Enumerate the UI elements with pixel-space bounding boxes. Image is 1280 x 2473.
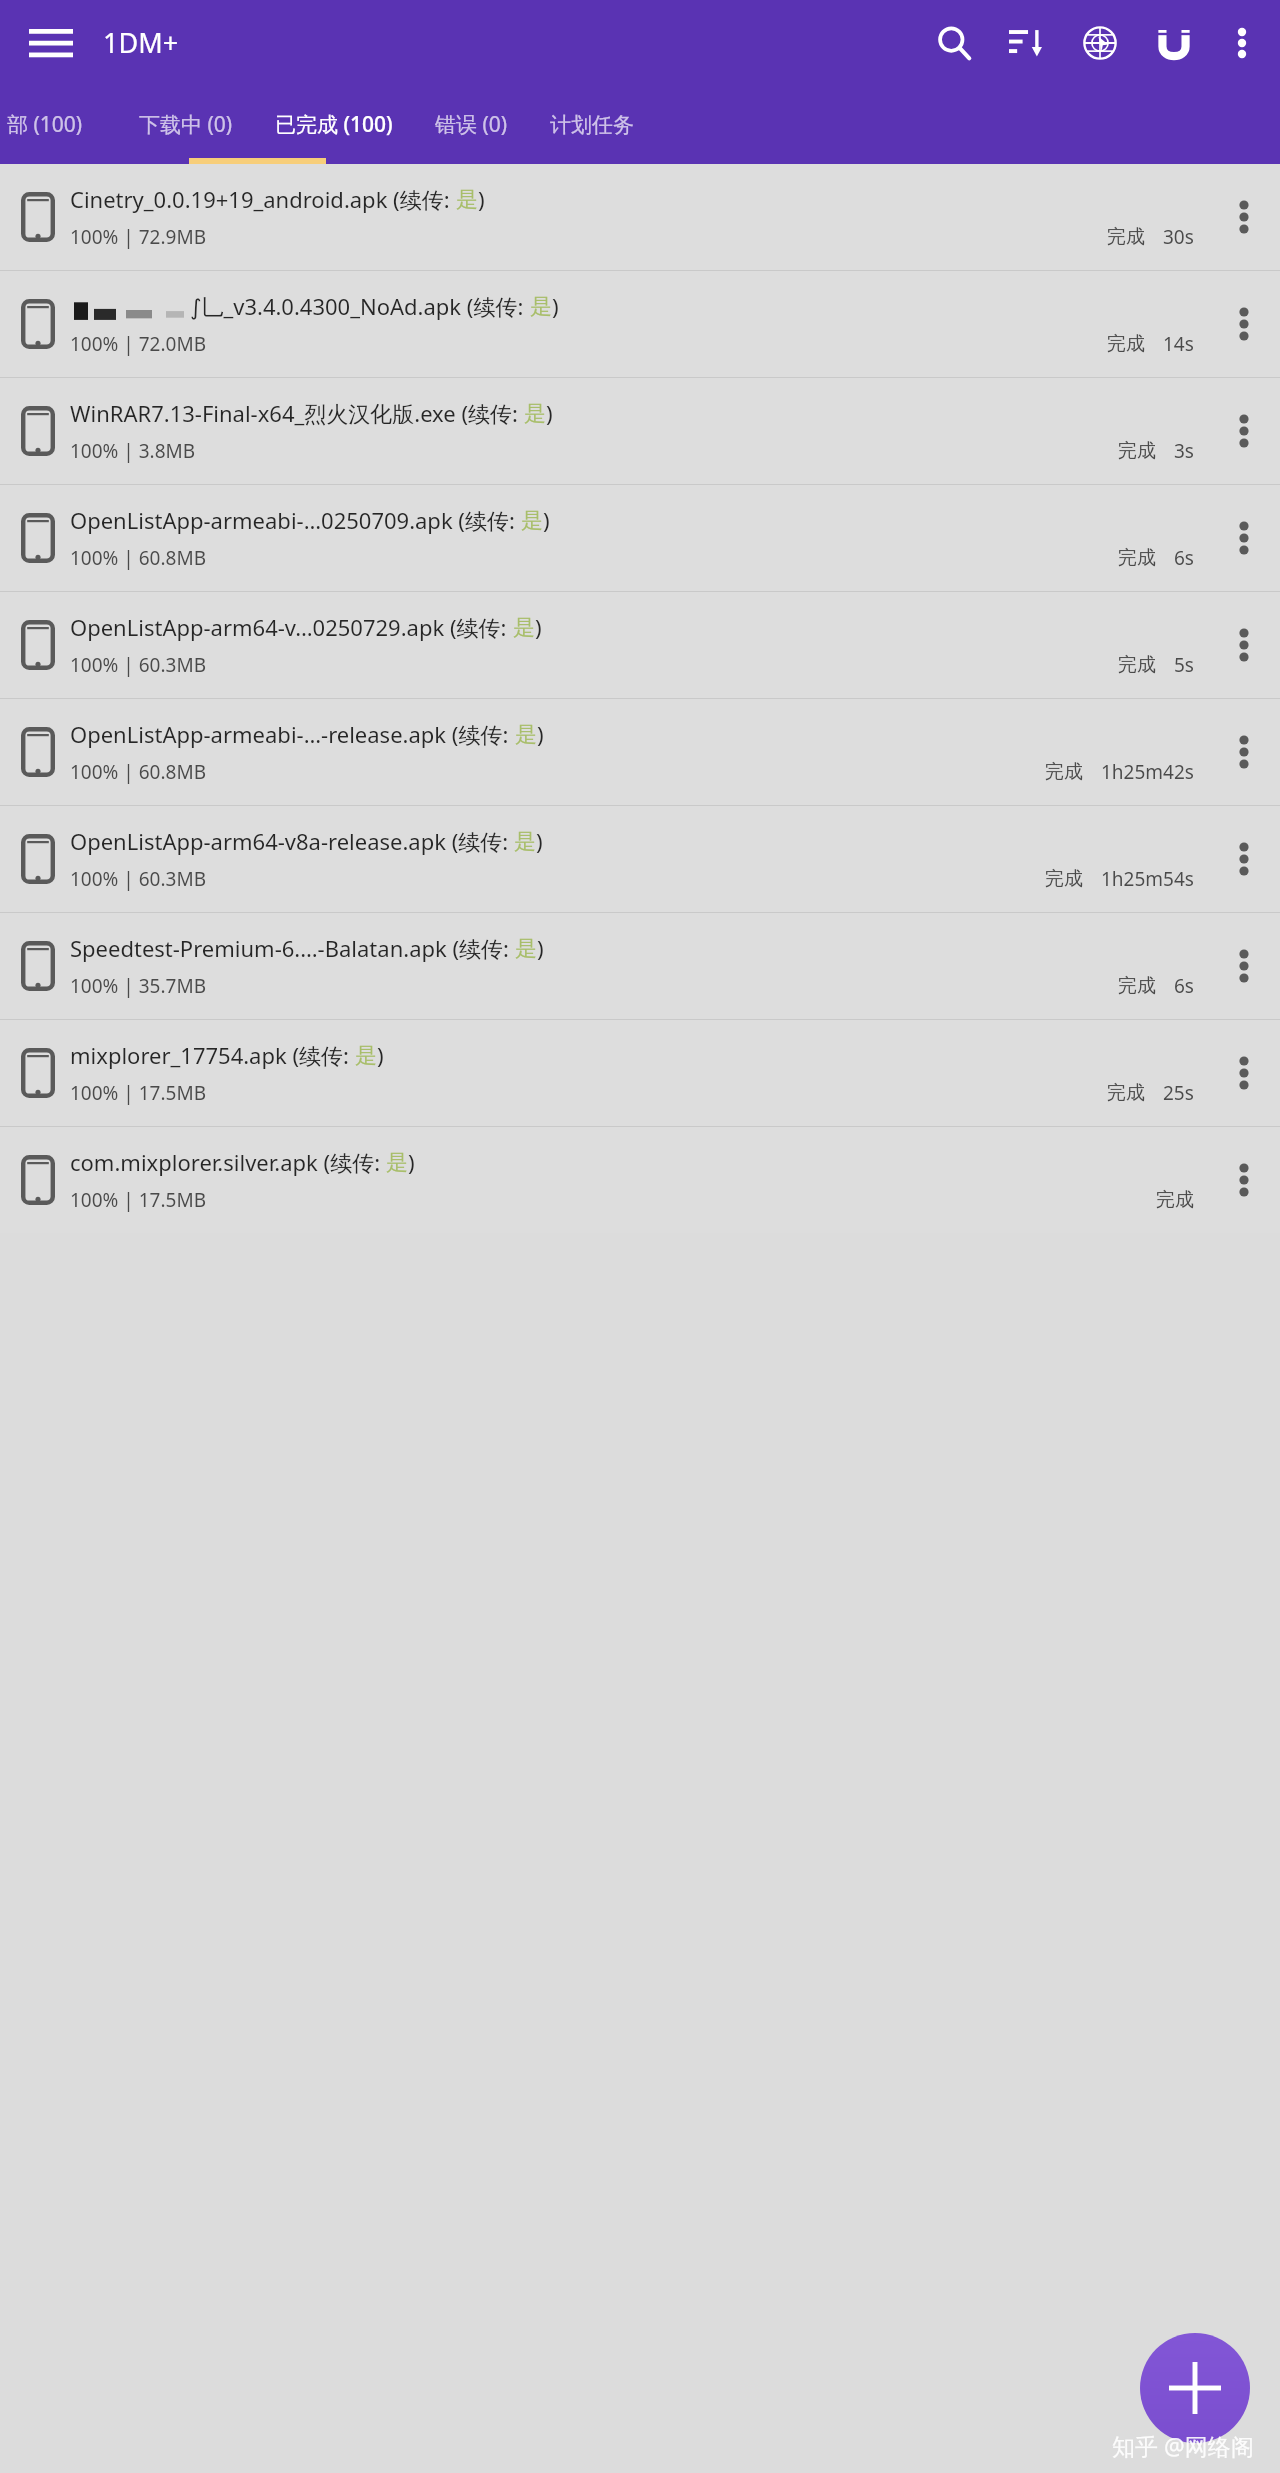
button[interactable]: OpenListApp-arm64-v8a-release.apk (续传: [0, 806, 1280, 912]
staticText: 是 [521, 507, 543, 535]
staticText: ) [543, 505, 550, 535]
staticText: 30s [1163, 224, 1194, 250]
button[interactable]: Item options [1208, 378, 1280, 484]
staticText: OpenListApp-arm64-v…0250729.apk (续传: [70, 612, 513, 642]
staticText: 100% | 60.8MB [70, 759, 207, 785]
button[interactable]: com.mixplorer.silver.apk (续传: [0, 1127, 1280, 1233]
button[interactable]: Magnet link [1148, 17, 1200, 69]
staticText: 完成 [1045, 760, 1083, 784]
staticText: 5s [1174, 652, 1194, 678]
staticText: ) [377, 1040, 384, 1070]
button[interactable]: Menu [27, 19, 75, 67]
button[interactable]: Item options [1208, 1127, 1280, 1233]
staticText: 知乎 @网络阁 [1112, 2430, 1254, 2461]
staticText: 是 [355, 1042, 377, 1070]
staticText: 是 [386, 1149, 408, 1177]
button[interactable]: 已完成 (100) [254, 104, 414, 145]
staticText: ) [537, 933, 544, 963]
staticText: 完成 [1118, 546, 1156, 570]
staticText: 错误 (0) [435, 110, 508, 139]
staticText: ) [408, 1147, 415, 1177]
staticText: 完成 [1045, 867, 1083, 891]
staticText: 是 [530, 293, 552, 321]
staticText: 100% | 17.5MB [70, 1187, 207, 1213]
staticText: 6s [1174, 973, 1194, 999]
staticText: ∫乚_v3.4.0.4300_NoAd.apk (续传: [190, 291, 530, 321]
button[interactable]: OpenListApp-arm64-v…0250729.apk (续传: [0, 592, 1280, 698]
staticText: 是 [514, 828, 536, 856]
staticText: 下载中 (0) [139, 110, 233, 139]
button[interactable]: Item options [1208, 485, 1280, 591]
staticText: 完成 [1118, 974, 1156, 998]
button[interactable]: Speedtest-Premium-6.…-Balatan.apk (续传: [0, 913, 1280, 1019]
button[interactable]: Item options [1208, 913, 1280, 1019]
staticText: 1DM+ [103, 24, 179, 61]
button[interactable]: Item options [1208, 699, 1280, 805]
staticText: com.mixplorer.silver.apk (续传: [70, 1147, 386, 1177]
staticText: 100% | 72.9MB [70, 224, 207, 250]
button[interactable]: 计划任务 [529, 106, 655, 144]
button[interactable]: Item options [1208, 164, 1280, 270]
staticText: 计划任务 [550, 112, 634, 138]
staticText: 部 (100) [7, 110, 83, 139]
staticText: 100% | 17.5MB [70, 1080, 207, 1106]
staticText: OpenListApp-arm64-v8a-release.apk (续传: [70, 826, 514, 856]
staticText: ) [536, 826, 543, 856]
staticText: 100% | 35.7MB [70, 973, 207, 999]
staticText: 完成 [1118, 439, 1156, 463]
staticText: 是 [515, 721, 537, 749]
button[interactable]: WinRAR7.13-Final-x64_烈火汉化版.exe (续传: [0, 378, 1280, 484]
button[interactable]: Sort [1000, 17, 1052, 69]
staticText: 1h25m42s [1101, 759, 1194, 785]
staticText: 100% | 72.0MB [70, 331, 207, 357]
button[interactable]: More options [1216, 17, 1268, 69]
staticText: OpenListApp-armeabi-…0250709.apk (续传: [70, 505, 521, 535]
button[interactable]: Item options [1208, 271, 1280, 377]
staticText: mixplorer_17754.apk (续传: [70, 1040, 355, 1070]
staticText: Cinetry_0.0.19+19_android.apk (续传: [70, 184, 456, 214]
staticText: 是 [513, 614, 535, 642]
staticText: ) [546, 398, 553, 428]
staticText: 完成 [1107, 225, 1145, 249]
staticText: ) [537, 719, 544, 749]
button[interactable]: ∫乚_v3.4.0.4300_NoAd.apk (续传: [0, 271, 1280, 377]
button[interactable]: 错误 (0) [414, 104, 529, 145]
staticText: ) [535, 612, 542, 642]
staticText: 完成 [1107, 1081, 1145, 1105]
staticText: 25s [1163, 1080, 1194, 1106]
staticText: 100% | 60.3MB [70, 866, 207, 892]
staticText: ) [552, 291, 559, 321]
button[interactable]: mixplorer_17754.apk (续传: [0, 1020, 1280, 1126]
button[interactable]: Add download [1140, 2333, 1250, 2443]
staticText: 100% | 3.8MB [70, 438, 196, 464]
button[interactable]: Cinetry_0.0.19+19_android.apk (续传: [0, 164, 1280, 270]
staticText: 已完成 (100) [275, 110, 393, 139]
button[interactable]: Item options [1208, 1020, 1280, 1126]
button[interactable]: 下载中 (0) [118, 104, 254, 145]
button[interactable]: Item options [1208, 592, 1280, 698]
staticText: 完成 [1118, 653, 1156, 677]
staticText: 1h25m54s [1101, 866, 1194, 892]
staticText: 是 [456, 186, 478, 214]
staticText: Speedtest-Premium-6.…-Balatan.apk (续传: [70, 933, 515, 963]
button[interactable]: OpenListApp-armeabi-…0250709.apk (续传: [0, 485, 1280, 591]
staticText: 完成 [1156, 1188, 1194, 1212]
button[interactable]: 部 (100) [0, 104, 104, 145]
staticText: 是 [524, 400, 546, 428]
staticText: 100% | 60.3MB [70, 652, 207, 678]
staticText: 14s [1163, 331, 1194, 357]
staticText: ) [478, 184, 485, 214]
staticText: 完成 [1107, 332, 1145, 356]
button[interactable]: Item options [1208, 806, 1280, 912]
button[interactable]: Search [928, 17, 980, 69]
staticText: WinRAR7.13-Final-x64_烈火汉化版.exe (续传: [70, 398, 524, 428]
staticText: 3s [1174, 438, 1194, 464]
staticText: 是 [515, 935, 537, 963]
button[interactable]: OpenListApp-armeabi-…-release.apk (续传: [0, 699, 1280, 805]
button[interactable]: Browser [1074, 17, 1126, 69]
button[interactable]: 1DM+ [103, 24, 179, 61]
staticText: OpenListApp-armeabi-…-release.apk (续传: [70, 719, 515, 749]
staticText: 6s [1174, 545, 1194, 571]
staticText: 100% | 60.8MB [70, 545, 207, 571]
